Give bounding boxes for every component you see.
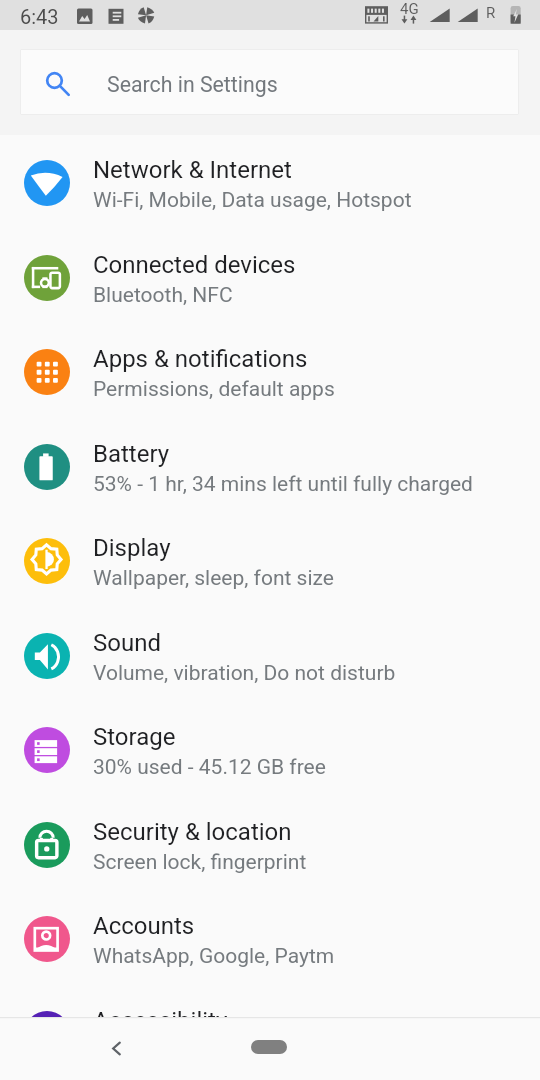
staticText: 6:43	[20, 5, 59, 28]
button[interactable]: Connected devices	[0, 230, 540, 325]
staticText: Search in Settings	[107, 72, 278, 97]
staticText: Sound	[93, 629, 161, 657]
staticText: Bluetooth, NFC	[93, 283, 233, 308]
button[interactable]: Battery	[0, 419, 540, 514]
staticText: WhatsApp, Google, Paytm	[93, 944, 335, 969]
staticText: Wi-Fi, Mobile, Data usage, Hotspot	[93, 188, 412, 213]
button[interactable]: Accessibility	[0, 986, 540, 1080]
staticText: Accessibility	[93, 1007, 228, 1035]
staticText: Screen lock, fingerprint	[93, 850, 307, 875]
staticText: Security & location	[93, 818, 292, 846]
staticText: 30% used - 45.12 GB free	[93, 755, 326, 780]
button[interactable]: Network & Internet	[0, 135, 540, 230]
button[interactable]: Sound	[0, 608, 540, 703]
staticText: Apps & notifications	[93, 345, 308, 373]
staticText: R	[486, 4, 496, 22]
staticText: 53% - 1 hr, 34 mins left until fully cha…	[93, 472, 473, 497]
staticText: Permissions, default apps	[93, 377, 335, 402]
staticText: Accounts	[93, 912, 195, 940]
button[interactable]: Search in Settings	[21, 50, 518, 114]
button[interactable]: Accounts	[0, 891, 540, 986]
staticText: Display	[93, 534, 171, 562]
staticText: Network & Internet	[93, 156, 292, 184]
button[interactable]: Back	[101, 1033, 132, 1064]
staticText: Wallpaper, sleep, font size	[93, 566, 334, 591]
staticText: Screen readers, display, interaction con…	[93, 1039, 498, 1064]
staticText: 4G	[400, 0, 419, 18]
button[interactable]: Home	[251, 1040, 287, 1054]
staticText: Connected devices	[93, 251, 296, 279]
button[interactable]: Security & location	[0, 797, 540, 892]
staticText: Volume, vibration, Do not disturb	[93, 661, 396, 686]
staticText: Storage	[93, 723, 176, 751]
button[interactable]: Apps & notifications	[0, 324, 540, 419]
staticText: Battery	[93, 440, 170, 468]
button[interactable]: Storage	[0, 702, 540, 797]
button[interactable]: Display	[0, 513, 540, 608]
